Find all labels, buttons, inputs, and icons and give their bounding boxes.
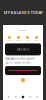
staticText: Tap to review details [5,61,31,64]
button[interactable]: Tab [34,96,41,98]
staticText: Request [15,40,21,41]
button[interactable]: Tab [12,96,19,98]
button[interactable]: Scan [23,36,32,41]
staticText: More [34,40,38,41]
staticText: Transactions this week [5,57,34,60]
button[interactable]: Send [5,36,14,41]
staticText: MY BALANCE TODAY [3,10,42,15]
staticText: Statement [16,48,29,51]
button[interactable]: Tab [27,96,34,98]
staticText: Scan [25,40,29,41]
button[interactable]: Request [14,36,23,41]
staticText: Send [7,40,11,41]
button[interactable]: Tab [19,96,27,98]
button[interactable]: More [32,36,41,41]
staticText: Pay [21,82,24,84]
button[interactable]: Tab [5,96,12,98]
